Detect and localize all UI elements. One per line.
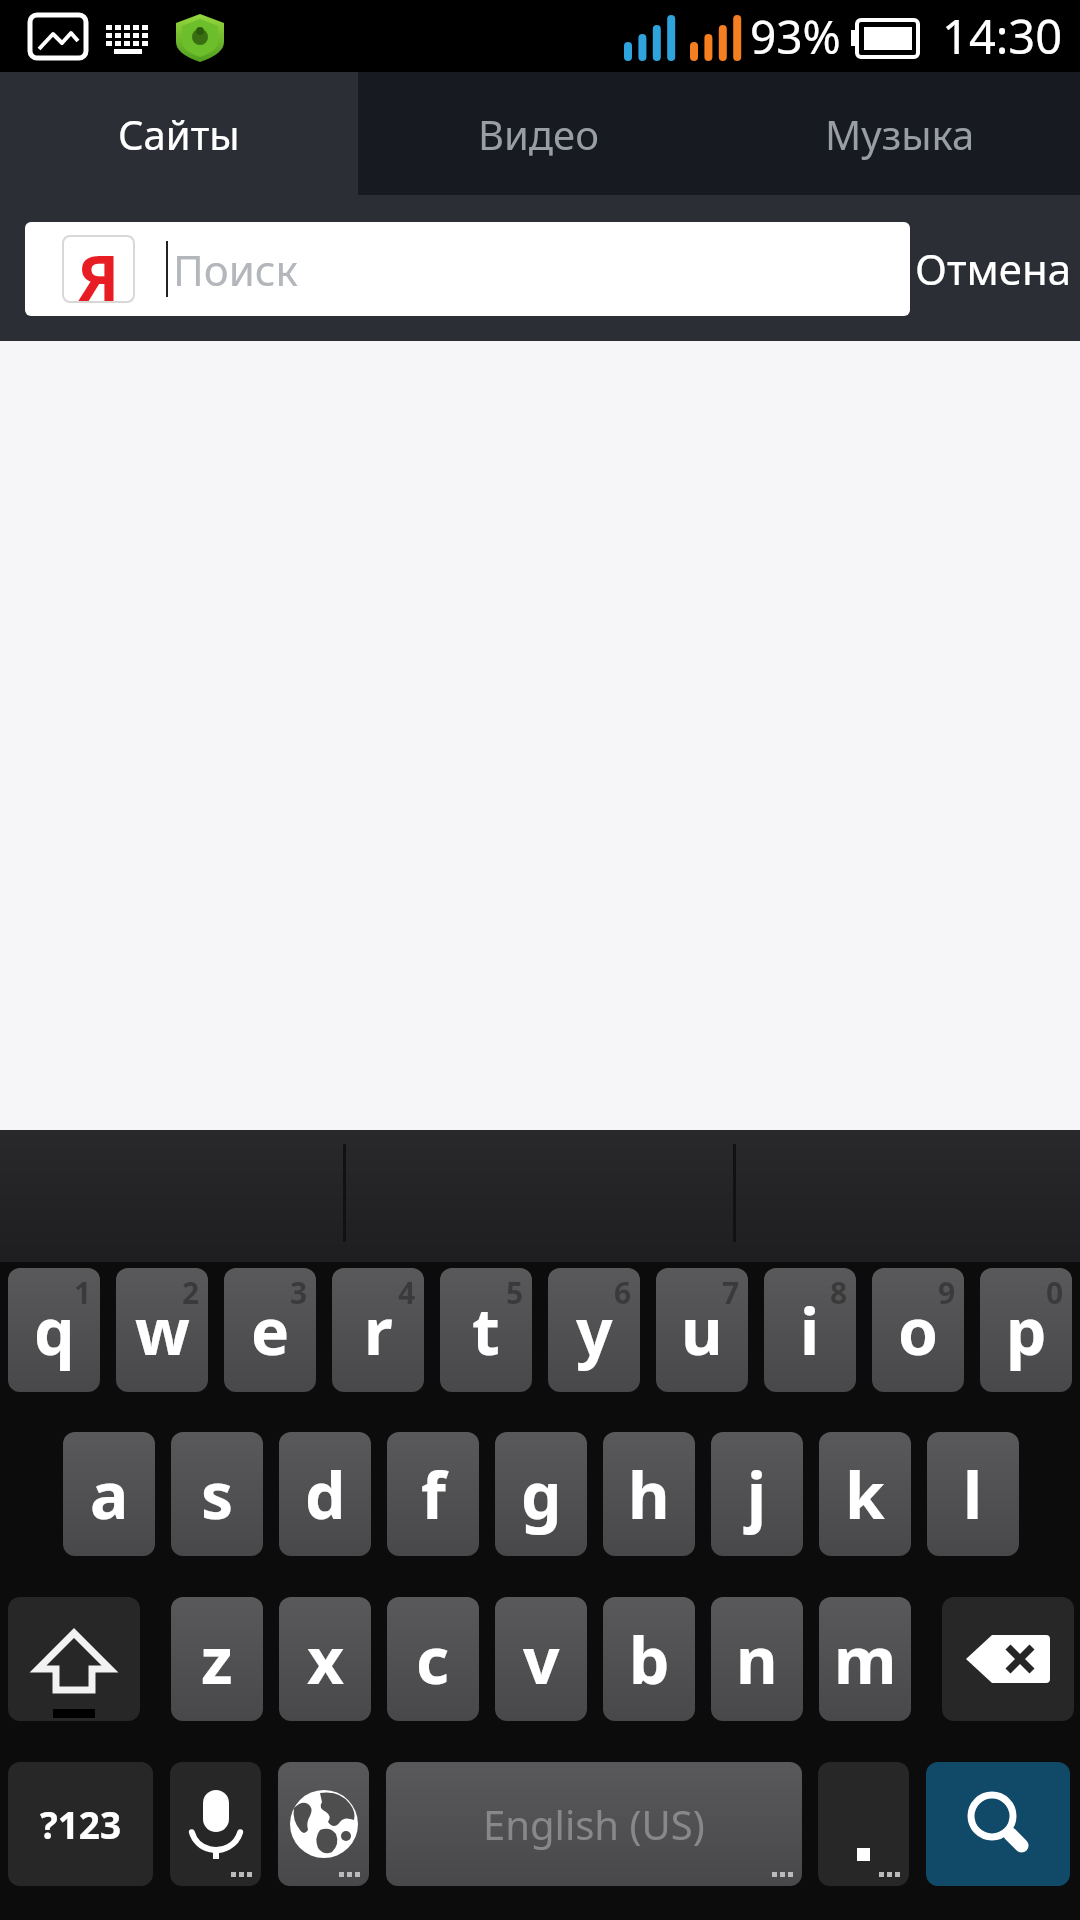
button[interactable]: Музыка (719, 72, 1080, 195)
staticText: ?123 (40, 1799, 122, 1849)
button[interactable]: l (927, 1432, 1019, 1556)
staticText: 0 (1046, 1272, 1064, 1313)
button[interactable]: Я (25, 222, 910, 316)
button[interactable]: ?123 (8, 1762, 153, 1886)
staticText: z (201, 1616, 233, 1703)
staticText: d (305, 1451, 346, 1538)
button[interactable]: w (116, 1268, 208, 1392)
staticText: English (US) (483, 1797, 705, 1851)
staticText: t (472, 1287, 500, 1374)
staticText: a (90, 1451, 129, 1538)
button[interactable] (942, 1597, 1074, 1721)
staticText: m (834, 1616, 897, 1703)
button[interactable]: s (171, 1432, 263, 1556)
staticText: r (364, 1287, 393, 1374)
button[interactable]: f (387, 1432, 479, 1556)
button[interactable]: m (819, 1597, 911, 1721)
staticText: u (681, 1287, 723, 1374)
staticText: q (34, 1287, 75, 1374)
button[interactable]: j (711, 1432, 803, 1556)
staticText: g (521, 1451, 562, 1538)
staticText: Я (77, 235, 120, 303)
staticText: p (1006, 1287, 1047, 1374)
staticText: Музыка (825, 107, 975, 161)
button[interactable] (170, 1762, 261, 1886)
button[interactable]: x (279, 1597, 371, 1721)
staticText: 4 (398, 1272, 416, 1313)
staticText: 2 (182, 1272, 200, 1313)
button[interactable]: c (387, 1597, 479, 1721)
button[interactable]: q (8, 1268, 100, 1392)
button[interactable] (278, 1762, 369, 1886)
staticText: Видео (478, 107, 599, 161)
button[interactable]: Отмена (915, 240, 1072, 297)
staticText: o (898, 1287, 938, 1374)
staticText: w (135, 1287, 190, 1374)
staticText: 3 (290, 1272, 308, 1313)
staticText: 9 (938, 1272, 956, 1313)
button[interactable]: English (US) (386, 1762, 802, 1886)
button[interactable]: r (332, 1268, 424, 1392)
button[interactable]: h (603, 1432, 695, 1556)
staticText: 6 (614, 1272, 632, 1313)
staticText: 93% (750, 5, 841, 68)
button[interactable]: a (63, 1432, 155, 1556)
button[interactable]: k (819, 1432, 911, 1556)
staticText: f (421, 1451, 446, 1538)
staticText: n (736, 1616, 778, 1703)
staticText: 14:30 (942, 4, 1063, 68)
button[interactable]: n (711, 1597, 803, 1721)
button[interactable]: o (872, 1268, 964, 1392)
staticText: b (629, 1616, 670, 1703)
button[interactable] (926, 1762, 1070, 1886)
button[interactable]: b (603, 1597, 695, 1721)
staticText: Поиск (173, 241, 298, 298)
button[interactable]: p (980, 1268, 1072, 1392)
staticText: 7 (722, 1272, 740, 1313)
button[interactable] (8, 1597, 140, 1721)
button[interactable]: v (495, 1597, 587, 1721)
staticText: Сайты (118, 107, 240, 161)
staticText: y (576, 1287, 613, 1374)
button[interactable]: t (440, 1268, 532, 1392)
button[interactable]: d (279, 1432, 371, 1556)
staticText: k (845, 1451, 885, 1538)
staticText: l (963, 1451, 983, 1538)
staticText: i (800, 1287, 820, 1374)
staticText: c (416, 1616, 450, 1703)
button[interactable]: y (548, 1268, 640, 1392)
button[interactable]: Сайты (0, 72, 358, 195)
button[interactable]: g (495, 1432, 587, 1556)
button[interactable]: u (656, 1268, 748, 1392)
staticText: Отмена (915, 240, 1072, 297)
staticText: s (201, 1451, 234, 1538)
staticText: 1 (74, 1272, 92, 1313)
staticText: 8 (830, 1272, 848, 1313)
staticText: 5 (506, 1272, 524, 1313)
staticText: j (747, 1451, 767, 1538)
staticText: e (251, 1287, 290, 1374)
staticText: x (307, 1616, 344, 1703)
staticText: h (628, 1451, 670, 1538)
button[interactable]: e (224, 1268, 316, 1392)
staticText: v (523, 1616, 560, 1703)
button[interactable]: i (764, 1268, 856, 1392)
button[interactable] (818, 1762, 909, 1886)
button[interactable]: z (171, 1597, 263, 1721)
button[interactable]: Видео (358, 72, 719, 195)
